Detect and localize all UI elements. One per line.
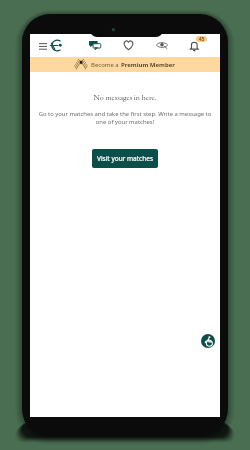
button[interactable]: Accessibility options bbox=[201, 334, 215, 348]
button[interactable]: Become a bbox=[30, 57, 220, 72]
staticText: Become a bbox=[91, 61, 121, 69]
staticText: 45 bbox=[199, 36, 205, 42]
staticText: Visit your matches bbox=[97, 154, 154, 163]
staticText: Go to your matches and take the first st… bbox=[34, 110, 216, 126]
button[interactable]: Messages bbox=[86, 37, 104, 53]
button[interactable]: Notifications bbox=[187, 35, 210, 54]
button[interactable]: Likes bbox=[120, 37, 136, 53]
button[interactable]: Menu bbox=[35, 40, 50, 52]
staticText: Premium Member bbox=[121, 61, 175, 69]
staticText: No messages in here. bbox=[93, 92, 157, 102]
button[interactable]: Visit your matches bbox=[92, 149, 158, 168]
button[interactable]: Visitors bbox=[153, 37, 170, 53]
